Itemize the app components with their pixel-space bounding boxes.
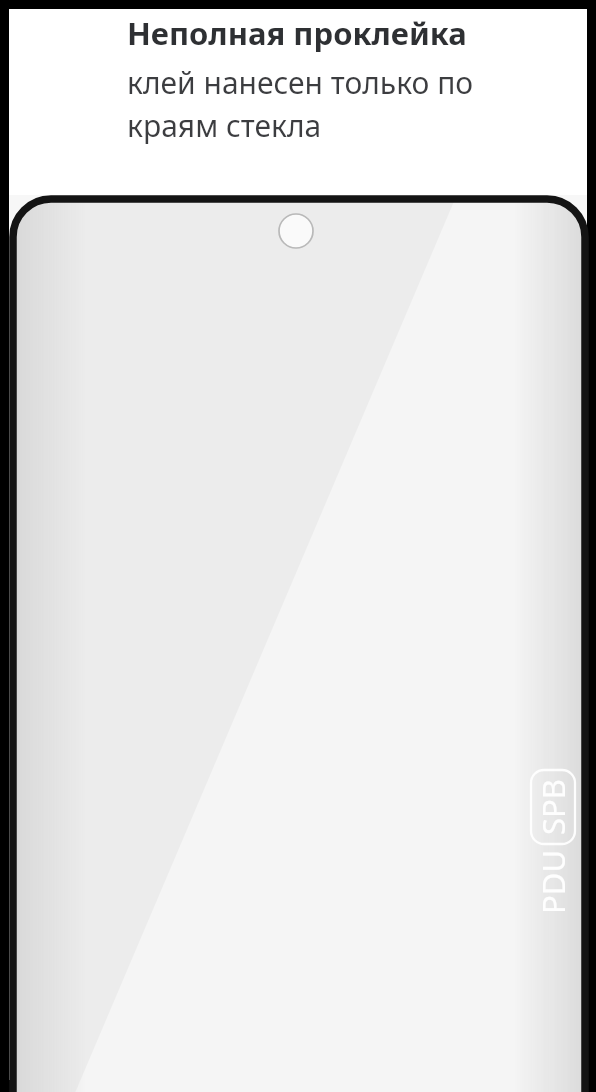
staticText: клей нанесен только по краям стекла xyxy=(127,62,521,146)
staticText: Неполная проклейка xyxy=(127,12,467,54)
button[interactable]: Фото защитного стекла xyxy=(0,0,596,1092)
